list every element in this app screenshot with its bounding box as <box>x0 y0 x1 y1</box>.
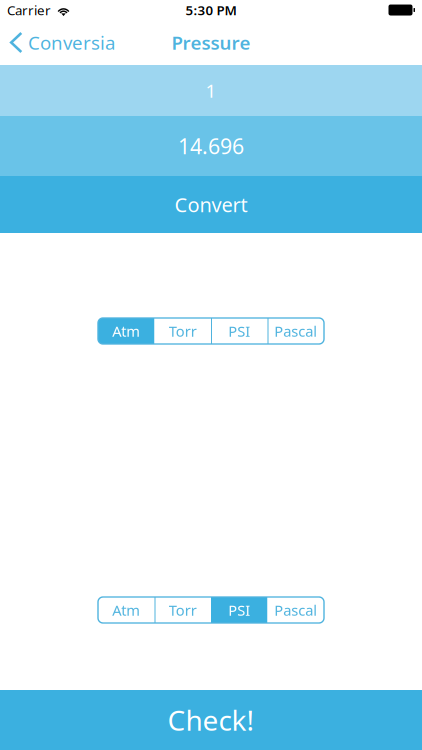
button[interactable]: Convert <box>0 176 422 233</box>
button[interactable]: Torr <box>154 318 211 344</box>
button[interactable]: Check! <box>0 690 422 750</box>
staticText: PSI <box>228 321 250 341</box>
staticText: Atm <box>112 600 140 620</box>
staticText: 14.696 <box>178 132 244 160</box>
button[interactable]: Pascal <box>267 318 324 344</box>
button[interactable]: Atm <box>98 318 154 344</box>
button[interactable]: Torr <box>154 597 211 623</box>
staticText: Pascal <box>274 600 317 620</box>
button[interactable]: PSI <box>211 597 267 623</box>
button[interactable]: Pascal <box>267 597 324 623</box>
staticText: Pressure <box>171 30 250 55</box>
staticText: Atm <box>112 321 140 341</box>
staticText: Conversia <box>28 30 115 55</box>
staticText: Torr <box>169 600 197 620</box>
button[interactable]: 14.696 <box>0 116 422 176</box>
button[interactable]: Atm <box>98 597 154 623</box>
staticText: Torr <box>169 321 197 341</box>
button[interactable]: Back to Conversia <box>0 20 115 65</box>
staticText: 1 <box>205 78 216 103</box>
staticText: 5:30 PM <box>185 1 236 19</box>
staticText: Carrier <box>7 1 51 19</box>
button[interactable]: PSI <box>211 318 267 344</box>
staticText: Convert <box>174 191 247 218</box>
staticText: Pascal <box>274 321 317 341</box>
staticText: Check! <box>167 701 254 739</box>
staticText: PSI <box>228 600 250 620</box>
